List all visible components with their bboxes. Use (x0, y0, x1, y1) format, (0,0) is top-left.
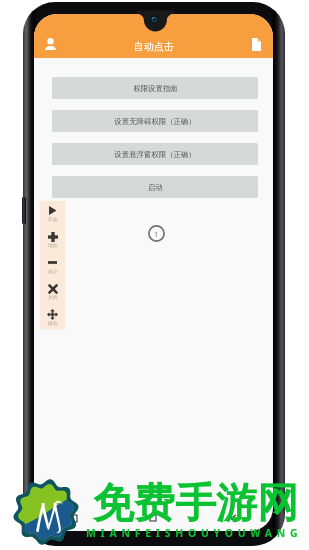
staticText: 减少 (48, 268, 58, 274)
button[interactable]: 设置无障碍权限（正确） (52, 110, 258, 132)
button[interactable]: 权限设置指南 (52, 77, 258, 99)
staticText: 设置悬浮窗权限（正确） (114, 150, 196, 159)
button[interactable]: 移动 (39, 304, 66, 330)
button[interactable]: 减少 (39, 252, 66, 278)
button[interactable]: 启动 (52, 176, 258, 198)
button[interactable]: 1 (148, 225, 165, 242)
staticText: 开始 (48, 216, 58, 222)
button[interactable]: 开始 (39, 200, 66, 226)
staticText: 增加 (48, 242, 58, 248)
staticText: 权限设置指南 (133, 84, 178, 93)
button[interactable]: 设置悬浮窗权限（正确） (52, 143, 258, 165)
button[interactable]: 增加 (39, 226, 66, 252)
button[interactable]: Account (37, 31, 63, 57)
button[interactable]: Back (193, 505, 273, 531)
staticText: 1 (154, 229, 159, 239)
staticText: 关闭 (48, 294, 58, 300)
staticText: 免费手游网 (93, 478, 298, 530)
button[interactable]: Recents (34, 505, 113, 531)
staticText: 移动 (48, 320, 58, 326)
staticText: 自动点击 (134, 40, 174, 53)
staticText: 设置无障碍权限（正确） (114, 117, 196, 126)
button[interactable]: Home (113, 505, 193, 531)
button[interactable]: Document (243, 31, 269, 57)
staticText: MIANFEISHOUYOUWANG (86, 526, 303, 540)
staticText: 启动 (148, 183, 163, 192)
button[interactable]: 关闭 (39, 278, 66, 304)
